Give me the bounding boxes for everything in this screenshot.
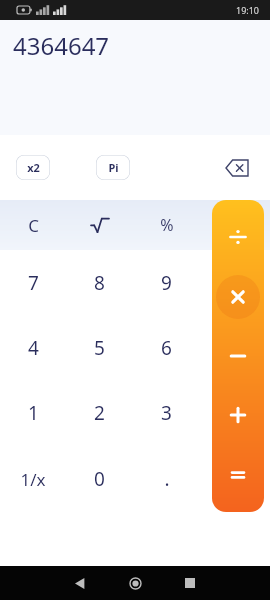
button[interactable]: Add	[216, 393, 260, 437]
button[interactable]: 7	[0, 250, 66, 315]
button[interactable]: Subtract	[216, 334, 260, 378]
staticText: %	[160, 214, 174, 236]
staticText: 6	[161, 335, 172, 361]
button[interactable]: 3	[133, 380, 200, 446]
button[interactable]: Backspace	[220, 151, 254, 185]
button[interactable]: C	[0, 200, 66, 250]
button[interactable]: .	[133, 446, 200, 512]
button[interactable]: %	[133, 200, 200, 250]
staticText: 1	[28, 400, 39, 426]
staticText: x2	[27, 160, 40, 175]
button[interactable]: x2	[16, 155, 50, 180]
button[interactable]: 8	[66, 250, 133, 315]
button[interactable]: Multiply	[216, 275, 260, 319]
staticText: 19:10	[236, 4, 260, 16]
staticText: 2	[94, 400, 105, 426]
button[interactable]: 1	[0, 380, 66, 446]
staticText: 4364647	[13, 29, 110, 62]
button[interactable]: Square root	[66, 200, 133, 250]
staticText: 1/x	[20, 468, 46, 491]
staticText: 8	[94, 270, 105, 296]
staticText: 0	[94, 466, 105, 492]
staticText: .	[164, 466, 170, 492]
staticText: 7	[28, 270, 39, 296]
button[interactable]: Pi	[96, 155, 130, 180]
button[interactable]: 0	[66, 446, 133, 512]
button[interactable]: 9	[133, 250, 200, 315]
button[interactable]: 2	[66, 380, 133, 446]
button[interactable]: 6	[133, 315, 200, 380]
button[interactable]: Back	[66, 569, 94, 597]
staticText: Pi	[108, 160, 119, 175]
button[interactable]: 4	[0, 315, 66, 380]
button[interactable]: Recents	[176, 569, 204, 597]
staticText: 3	[161, 400, 172, 426]
staticText: 5	[94, 335, 105, 361]
button[interactable]: Home	[121, 569, 149, 597]
button[interactable]: Equals	[216, 453, 260, 497]
button[interactable]: Divide	[216, 215, 260, 259]
staticText: C	[28, 214, 39, 237]
button[interactable]: 1/x	[0, 446, 66, 512]
staticText: 9	[161, 270, 172, 296]
button[interactable]: 5	[66, 315, 133, 380]
staticText: 4	[28, 335, 39, 361]
